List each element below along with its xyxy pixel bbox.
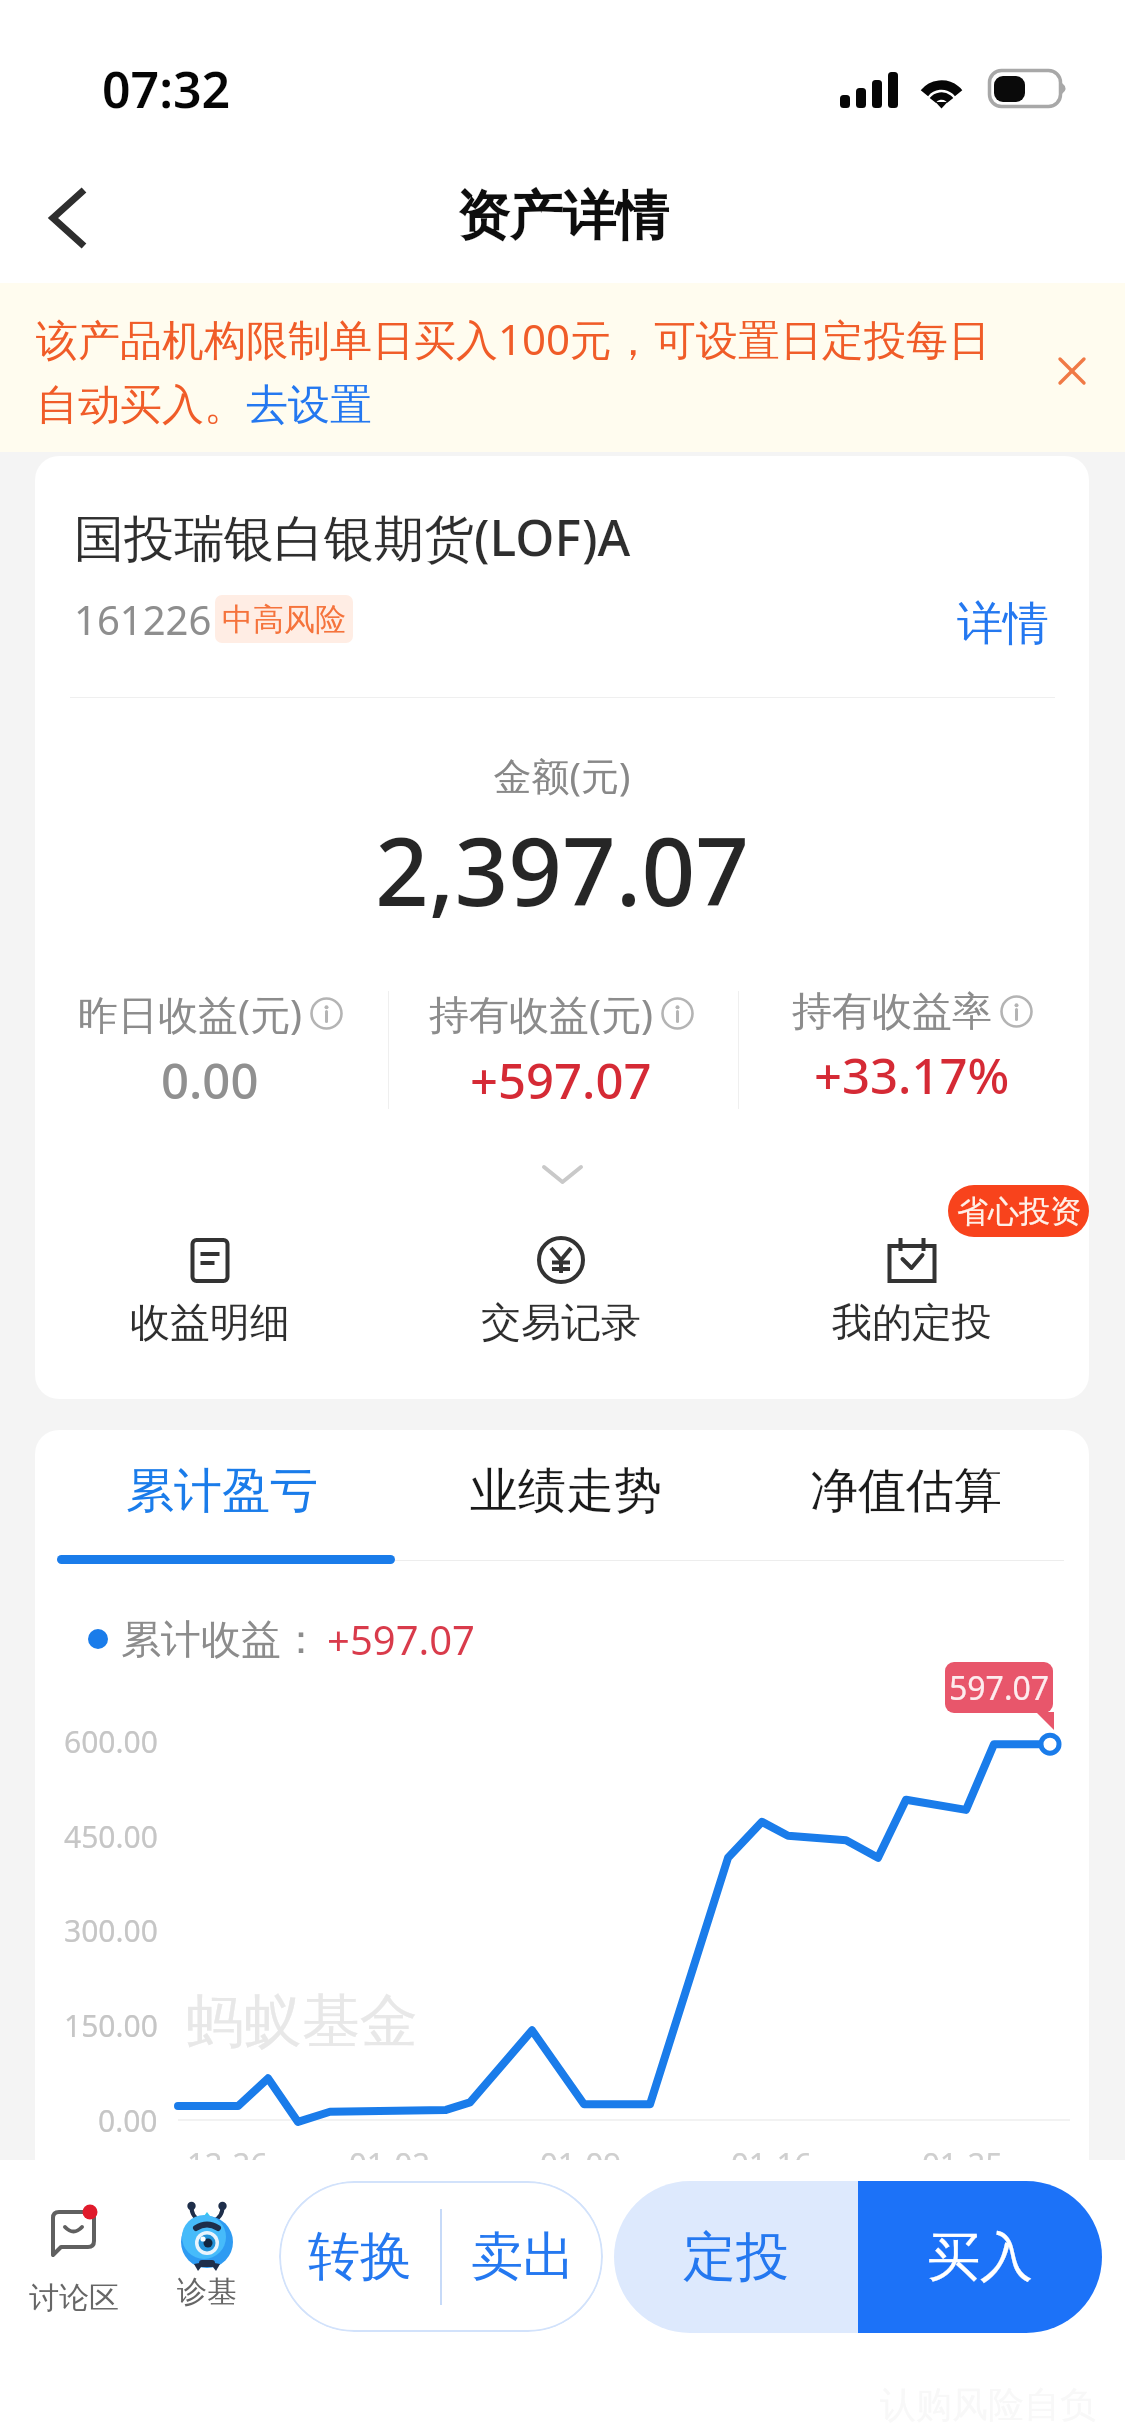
button[interactable]: 讨论区 [11, 2207, 137, 2317]
staticText: 累计盈亏 [126, 1461, 318, 1521]
staticText: 600.00 [64, 1721, 158, 1762]
button[interactable]: 净值估算 [736, 1441, 1076, 1541]
staticText: 资产详情 [0, 183, 1125, 250]
staticText: +597.07 [470, 1047, 652, 1114]
button[interactable]: 交易记录 [386, 1236, 736, 1347]
staticText: 中高风险 [222, 600, 346, 639]
staticText: 01-09 [540, 2142, 621, 2184]
staticText: 蚂蚁基金 [186, 1985, 418, 2058]
staticText: 12-26 [187, 2142, 268, 2184]
staticText: 讨论区 [29, 2279, 119, 2317]
staticText: 详情 [957, 595, 1049, 653]
button[interactable]: 去设置 [246, 379, 372, 432]
staticText: 该产品机构限制单日买入100元，可设置日定投每日 [36, 310, 991, 367]
staticText: 07:32 [102, 55, 231, 123]
button[interactable]: 我的定投 [737, 1236, 1087, 1347]
staticText: 01-16 [731, 2142, 812, 2184]
staticText: 自动买入。 [36, 379, 246, 432]
staticText: 金额(元) [35, 749, 1089, 801]
staticText: 150.00 [64, 2005, 158, 2046]
staticText: 01-02 [349, 2142, 430, 2184]
button[interactable]: 业绩走势 [396, 1441, 736, 1541]
staticText: 300.00 [64, 1910, 158, 1951]
staticText: 净值估算 [810, 1461, 1002, 1521]
staticText: 定投 [683, 2224, 789, 2291]
staticText: 我的定投 [832, 1297, 992, 1347]
staticText: 业绩走势 [470, 1461, 662, 1521]
staticText: +33.17% [814, 1042, 1010, 1109]
staticText: 2,397.07 [35, 806, 1089, 934]
staticText: 持有收益率 [792, 986, 992, 1036]
staticText: 累计收益： [121, 1614, 321, 1664]
staticText: 450.00 [64, 1816, 158, 1857]
staticText: 收益明细 [130, 1297, 290, 1347]
staticText: 诊基 [177, 2273, 237, 2311]
staticText: +597.07 [327, 1612, 475, 1666]
button[interactable]: 收益明细 [35, 1236, 385, 1347]
button[interactable]: Back [14, 160, 110, 270]
button[interactable]: 诊基 [144, 2210, 270, 2311]
staticText: 0.00 [161, 1047, 259, 1114]
button[interactable]: Expand more [524, 1150, 601, 1200]
staticText: 昨日收益(元) [78, 986, 302, 1041]
button[interactable]: Close banner [1032, 334, 1112, 414]
staticText: 省心投资 [957, 1192, 1081, 1231]
staticText: 卖出 [471, 2224, 575, 2290]
staticText: 01-25 [922, 2142, 1003, 2184]
button[interactable]: 定投 [614, 2181, 858, 2333]
staticText: 去设置 [246, 379, 372, 432]
staticText: 0.00 [98, 2100, 158, 2141]
button[interactable]: 转换 [279, 2181, 440, 2332]
staticText: 161226 [74, 592, 212, 646]
staticText: 持有收益(元) [429, 986, 653, 1041]
button[interactable]: 买入 [858, 2181, 1102, 2333]
button[interactable]: 详情 [949, 587, 1057, 661]
button[interactable]: 累计盈亏 [52, 1441, 392, 1541]
staticText: 交易记录 [481, 1297, 641, 1347]
staticText: 转换 [308, 2224, 412, 2290]
staticText: 597.07 [949, 1666, 1050, 1710]
staticText: 国投瑞银白银期货(LOF)A [74, 503, 631, 571]
button[interactable]: 卖出 [442, 2181, 603, 2332]
staticText: 买入 [927, 2224, 1033, 2291]
